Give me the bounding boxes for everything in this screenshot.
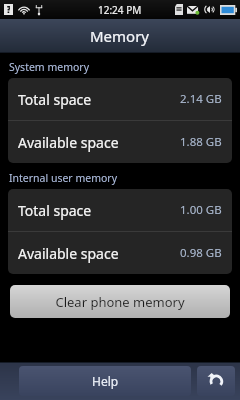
- button[interactable]: Clear phone memory: [10, 285, 230, 318]
- staticText: Available space: [18, 133, 119, 152]
- staticText: Internal user memory: [9, 171, 118, 185]
- button[interactable]: Help: [19, 366, 191, 396]
- staticText: Clear phone memory: [55, 293, 185, 311]
- staticText: 0.98 GB: [180, 245, 222, 261]
- button[interactable]: Available space: [8, 232, 232, 274]
- staticText: 1.00 GB: [180, 202, 222, 218]
- staticText: Total space: [18, 201, 92, 220]
- staticText: 2.14 GB: [180, 91, 222, 107]
- staticText: Help: [92, 373, 119, 389]
- button[interactable]: Available space: [8, 121, 232, 163]
- button[interactable]: Total space: [8, 189, 232, 231]
- staticText: 1.88 GB: [180, 134, 222, 150]
- staticText: 12:24 PM: [98, 3, 142, 17]
- staticText: Total space: [18, 90, 92, 109]
- staticText: Memory: [90, 26, 150, 46]
- button[interactable]: Back: [197, 366, 235, 396]
- staticText: System memory: [9, 60, 90, 74]
- staticText: Available space: [18, 244, 119, 263]
- button[interactable]: Total space: [8, 78, 232, 120]
